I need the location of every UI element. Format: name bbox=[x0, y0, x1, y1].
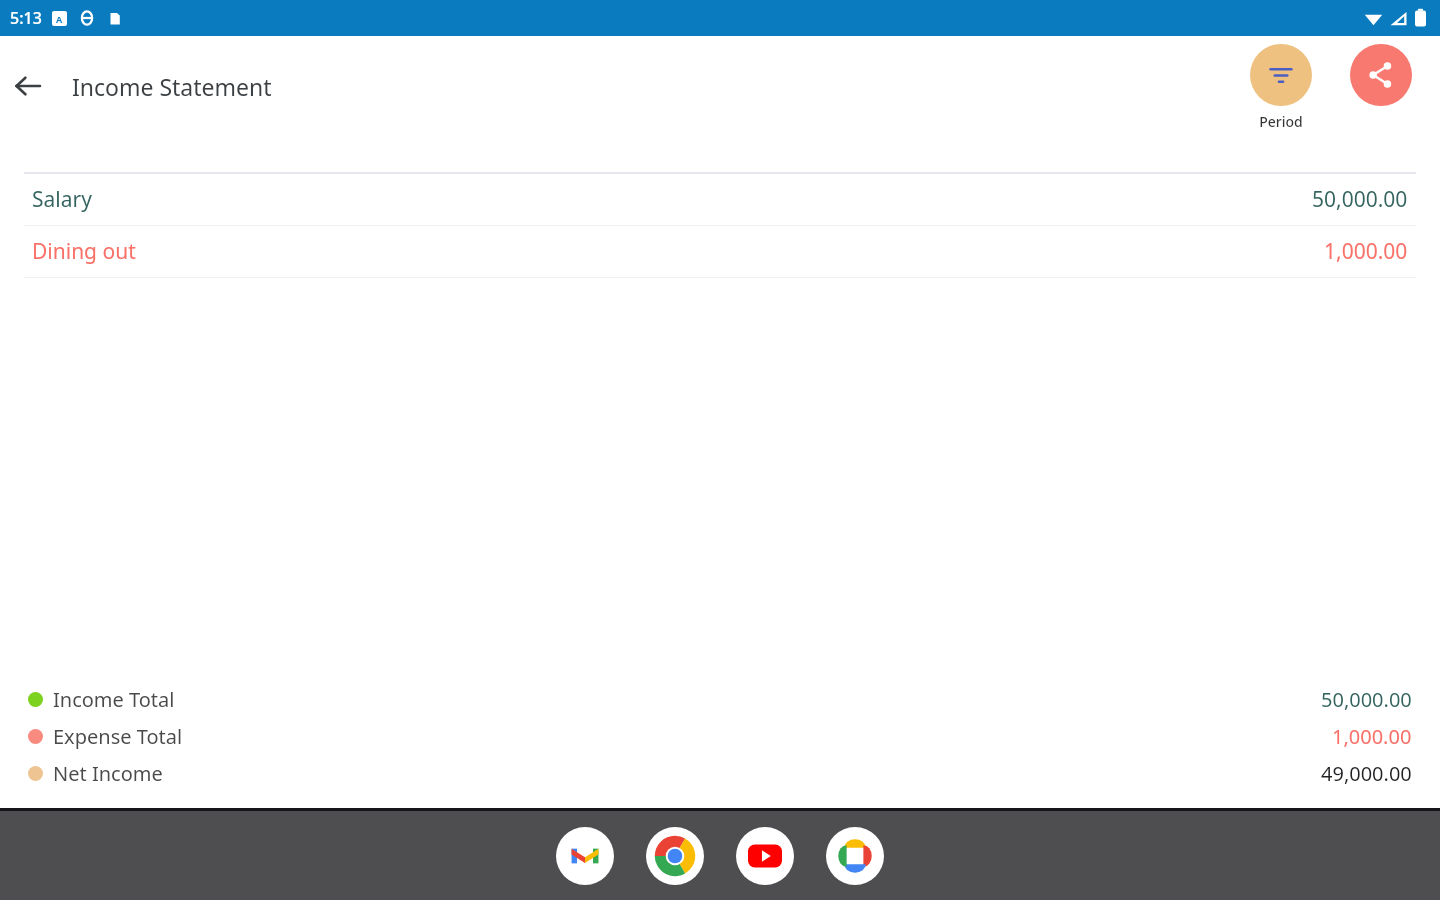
staticText: Income Statement bbox=[72, 71, 272, 102]
staticText: 49,000.00 bbox=[1321, 760, 1412, 787]
staticText: A bbox=[56, 13, 63, 25]
staticText: 1,000.00 bbox=[1332, 723, 1412, 750]
staticText: 50,000.00 bbox=[1321, 686, 1412, 713]
button[interactable]: Gmail bbox=[556, 827, 614, 885]
button[interactable]: Photos bbox=[826, 827, 884, 885]
button[interactable]: Dining out bbox=[0, 226, 1440, 277]
staticText: Income Total bbox=[53, 686, 175, 713]
button[interactable]: Share bbox=[1350, 44, 1412, 106]
staticText: 1,000.00 bbox=[1324, 237, 1408, 266]
button[interactable]: Period filter bbox=[1250, 44, 1312, 131]
button[interactable]: Chrome bbox=[646, 827, 704, 885]
staticText: Period bbox=[1259, 112, 1303, 131]
button[interactable]: YouTube bbox=[736, 827, 794, 885]
staticText: 5:13 bbox=[10, 7, 42, 29]
staticText: Expense Total bbox=[53, 723, 183, 750]
staticText: 50,000.00 bbox=[1312, 185, 1408, 214]
button[interactable]: Salary bbox=[0, 174, 1440, 225]
staticText: Salary bbox=[32, 185, 92, 214]
staticText: Dining out bbox=[32, 237, 136, 266]
other: Period filter bbox=[1250, 44, 1312, 106]
staticText: Net Income bbox=[53, 760, 163, 787]
button[interactable]: Back bbox=[0, 58, 56, 114]
